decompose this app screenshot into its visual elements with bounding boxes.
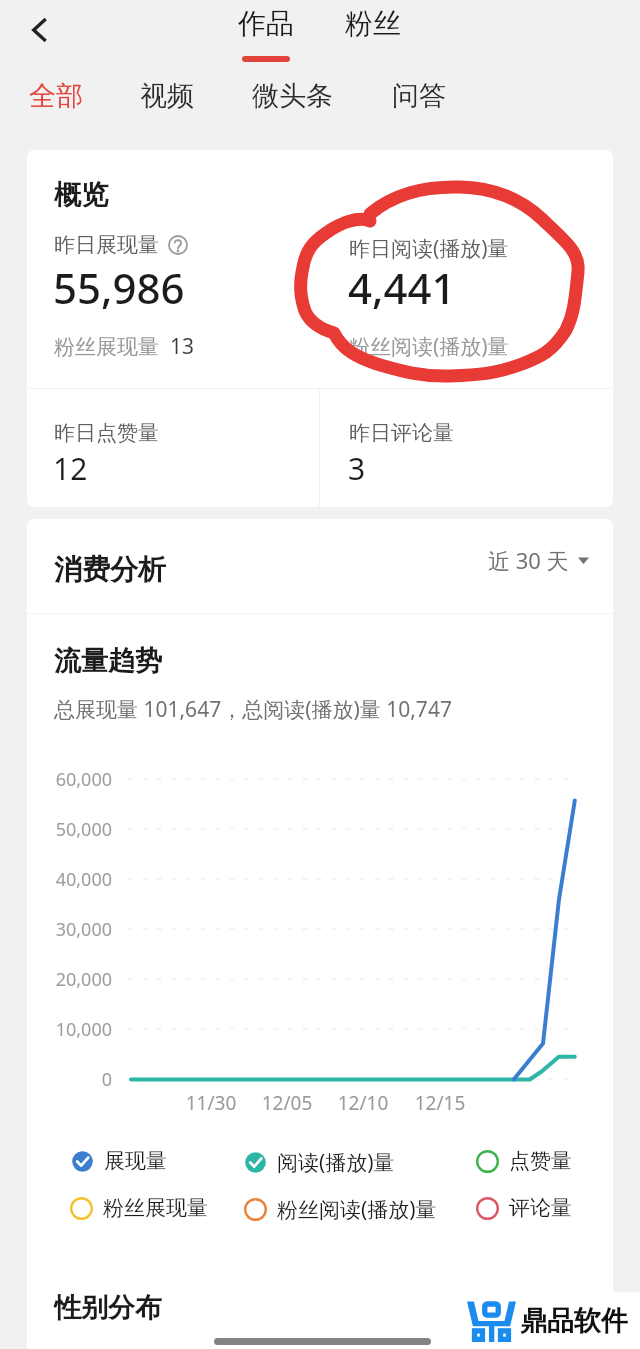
button[interactable]: 作品 <box>232 2 300 66</box>
staticText: 12 <box>53 448 88 489</box>
other: Logo <box>466 1296 517 1342</box>
staticText: 4,441 <box>348 259 456 316</box>
staticText: 流量趋势 <box>54 644 162 678</box>
staticText: 0 <box>27 1067 112 1092</box>
button[interactable]: 粉丝展现量 <box>67 1192 211 1224</box>
button[interactable]: 视频 <box>138 76 196 116</box>
button[interactable]: 近 30 天 <box>482 539 595 581</box>
staticText: 昨日展现量 <box>54 232 159 258</box>
button[interactable]: Help <box>168 235 188 255</box>
button[interactable]: 粉丝 <box>339 2 407 45</box>
staticText: 40,000 <box>27 867 112 892</box>
staticText: 视频 <box>140 79 194 113</box>
button[interactable]: 展现量 <box>68 1145 170 1177</box>
staticText: 昨日点赞量 <box>54 420 159 446</box>
staticText: 12/10 <box>323 1090 403 1116</box>
staticText: 20,000 <box>27 967 112 992</box>
staticText: 总展现量 101,647，总阅读(播放)量 10,747 <box>54 695 452 724</box>
staticText: 粉丝 <box>345 6 401 41</box>
button[interactable]: 问答 <box>390 76 448 116</box>
staticText: 全部 <box>29 79 83 113</box>
staticText: 粉丝展现量 <box>54 334 159 360</box>
staticText: 30,000 <box>27 917 112 942</box>
staticText: 12/15 <box>400 1090 480 1116</box>
staticText: 性别分布 <box>54 1291 162 1325</box>
staticText: 3 <box>348 448 366 489</box>
staticText: 13 <box>170 332 195 361</box>
button[interactable]: Back <box>20 10 60 50</box>
staticText: 展现量 <box>104 1148 167 1174</box>
staticText: 11/30 <box>171 1090 251 1116</box>
staticText: 60,000 <box>27 767 112 792</box>
button[interactable]: 粉丝阅读(播放)量 <box>241 1192 440 1227</box>
staticText: 粉丝展现量 <box>103 1195 208 1221</box>
staticText: 点赞量 <box>509 1148 572 1174</box>
staticText: 近 30 天 <box>488 545 569 575</box>
staticText: 粉丝阅读(播放)量 <box>277 1195 437 1224</box>
button[interactable]: 微头条 <box>250 76 335 116</box>
staticText: 作品 <box>238 6 294 41</box>
staticText: 消费分析 <box>54 552 166 587</box>
staticText: 50,000 <box>27 817 112 842</box>
staticText: 概览 <box>54 178 108 212</box>
staticText: 10,000 <box>27 1017 112 1042</box>
staticText: 鼎品软件 <box>520 1304 628 1338</box>
staticText: 12/05 <box>247 1090 327 1116</box>
staticText: 粉丝阅读(播放)量 <box>349 332 509 361</box>
staticText: 微头条 <box>252 79 333 113</box>
button[interactable]: 全部 <box>27 76 85 116</box>
button[interactable]: 阅读(播放)量 <box>241 1145 398 1180</box>
staticText: 昨日阅读(播放)量 <box>349 234 509 263</box>
button[interactable]: 评论量 <box>473 1192 575 1224</box>
staticText: 55,986 <box>53 259 185 316</box>
staticText: 问答 <box>392 79 446 113</box>
staticText: 昨日评论量 <box>349 420 454 446</box>
staticText: 阅读(播放)量 <box>277 1148 395 1177</box>
button[interactable]: 点赞量 <box>473 1145 575 1177</box>
staticText: 评论量 <box>509 1195 572 1221</box>
